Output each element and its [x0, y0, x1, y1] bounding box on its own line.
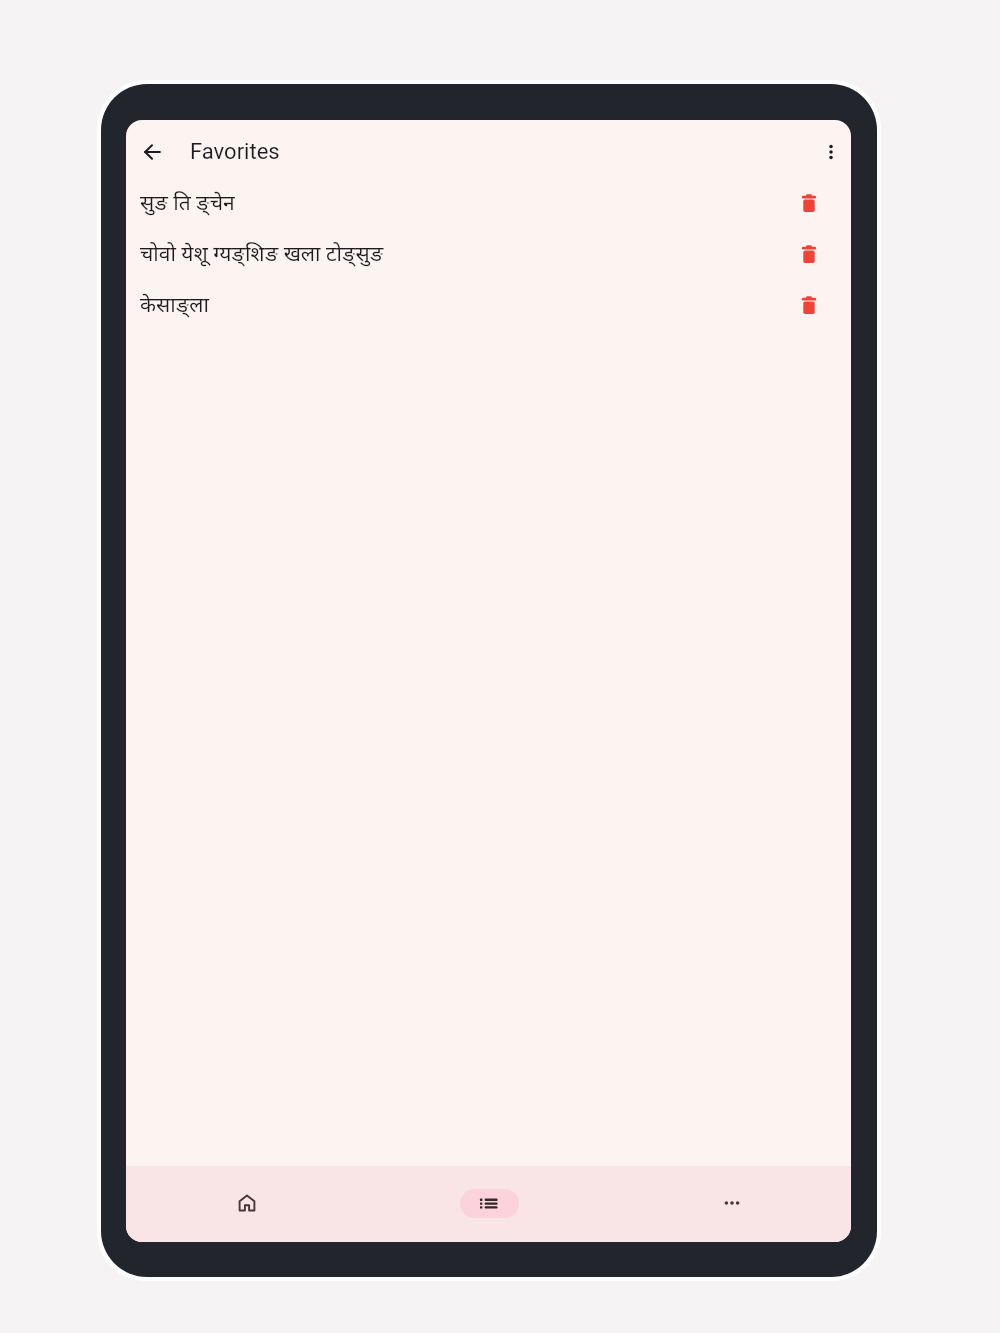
button[interactable] — [141, 140, 165, 164]
staticText: सुङ ति ङ्चेन — [140, 188, 235, 217]
button[interactable] — [797, 242, 821, 266]
button[interactable]: केसाङ्ला — [126, 279, 851, 330]
button[interactable] — [609, 1166, 851, 1242]
button[interactable] — [797, 293, 821, 317]
button[interactable] — [819, 140, 843, 164]
button[interactable] — [367, 1166, 609, 1242]
button[interactable] — [797, 191, 821, 215]
button[interactable]: सुङ ति ङ्चेन — [126, 177, 851, 228]
staticText: केसाङ्ला — [140, 290, 209, 319]
button[interactable] — [126, 1166, 367, 1242]
staticText: चोवो येशू ग्यङ्शिङ खला टोङ्सुङ — [140, 239, 384, 268]
button[interactable]: चोवो येशू ग्यङ्शिङ खला टोङ्सुङ — [126, 228, 851, 279]
staticText: Favorites — [190, 139, 280, 165]
